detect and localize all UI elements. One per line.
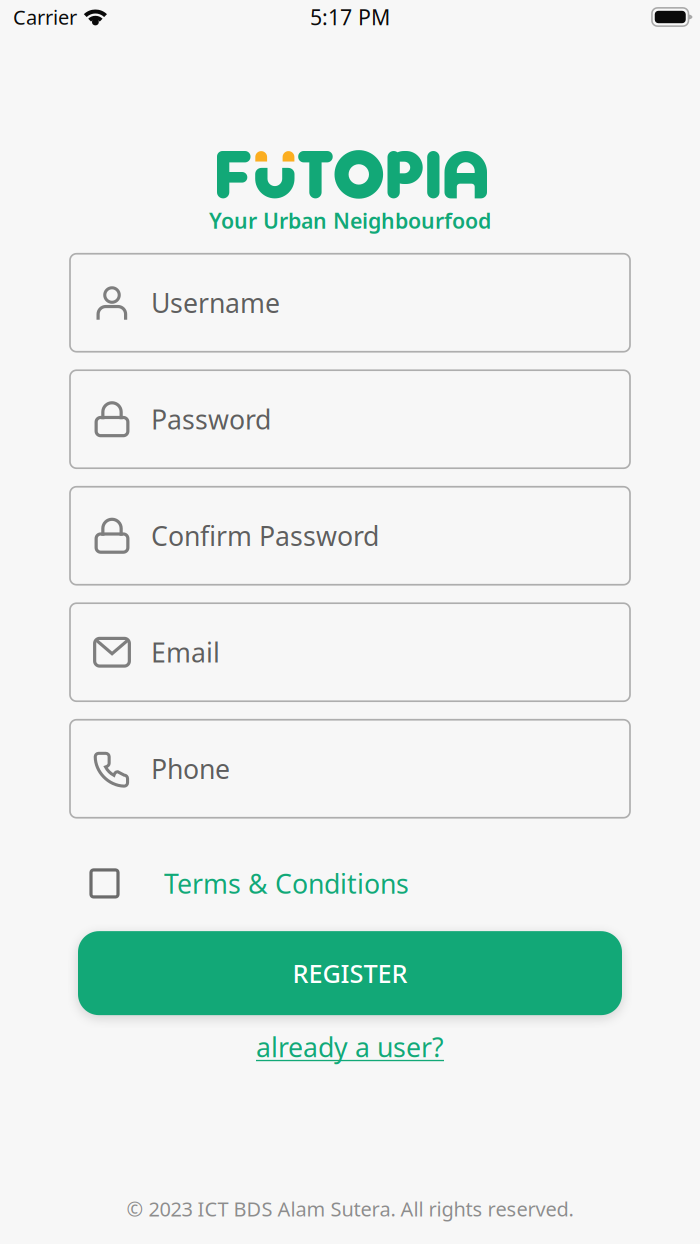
button[interactable]: Confirm Password: [70, 487, 630, 585]
staticText: 5:17 PM: [310, 3, 390, 31]
staticText: Your Urban Neighbourfood: [209, 206, 491, 235]
staticText: already a user?: [256, 1029, 444, 1064]
staticText: Phone: [151, 751, 230, 786]
button[interactable]: Email: [70, 603, 630, 701]
button[interactable]: Password: [70, 370, 630, 468]
staticText: REGISTER: [292, 956, 407, 990]
staticText: Carrier: [13, 4, 77, 30]
button[interactable]: already a user?: [256, 1029, 444, 1064]
staticText: Email: [151, 634, 220, 670]
button[interactable]: REGISTER: [78, 931, 622, 1015]
staticText: © 2023 ICT BDS Alam Sutera. All rights r…: [126, 1195, 573, 1222]
staticText: Password: [151, 401, 271, 437]
button[interactable]: Accept Terms and Conditions: [91, 870, 118, 897]
staticText: Confirm Password: [151, 518, 379, 553]
button[interactable]: Phone: [70, 720, 630, 818]
staticText: Username: [151, 285, 280, 320]
button[interactable]: Username: [70, 254, 630, 352]
button[interactable]: Terms & Conditions: [164, 866, 409, 901]
staticText: Terms & Conditions: [164, 866, 409, 901]
